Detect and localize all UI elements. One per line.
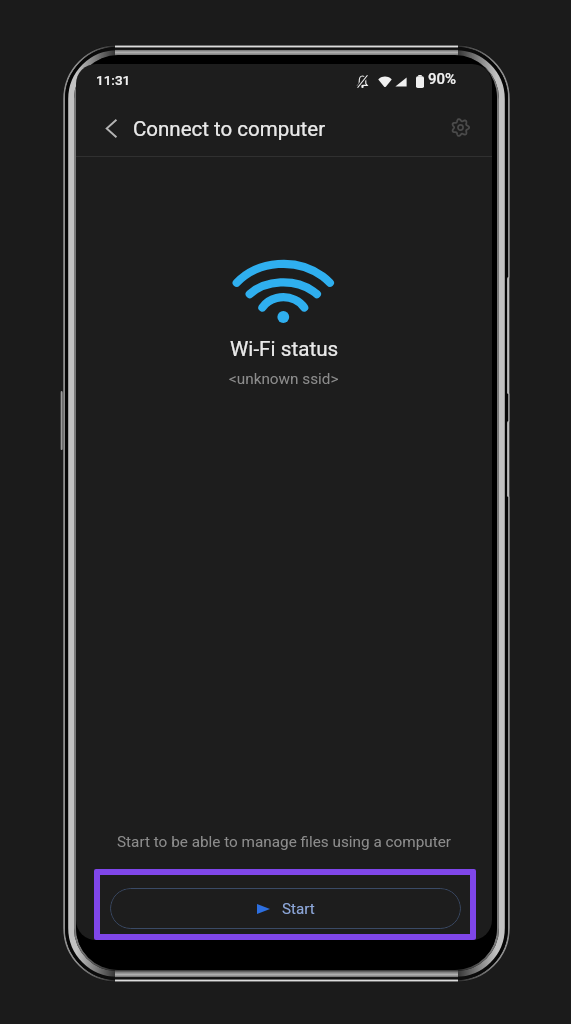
staticText: <unknown ssid> (229, 370, 339, 388)
staticText: Start (282, 900, 315, 918)
button[interactable]: Settings (440, 107, 480, 147)
staticText: 90% (428, 70, 457, 88)
staticText: Connect to computer (133, 117, 326, 141)
staticText: Wi-Fi status (230, 337, 339, 361)
button[interactable]: Back (91, 108, 131, 148)
button[interactable]: Start (110, 888, 461, 929)
staticText: Start to be able to manage files using a… (117, 833, 451, 851)
staticText: 11:31 (96, 72, 131, 88)
